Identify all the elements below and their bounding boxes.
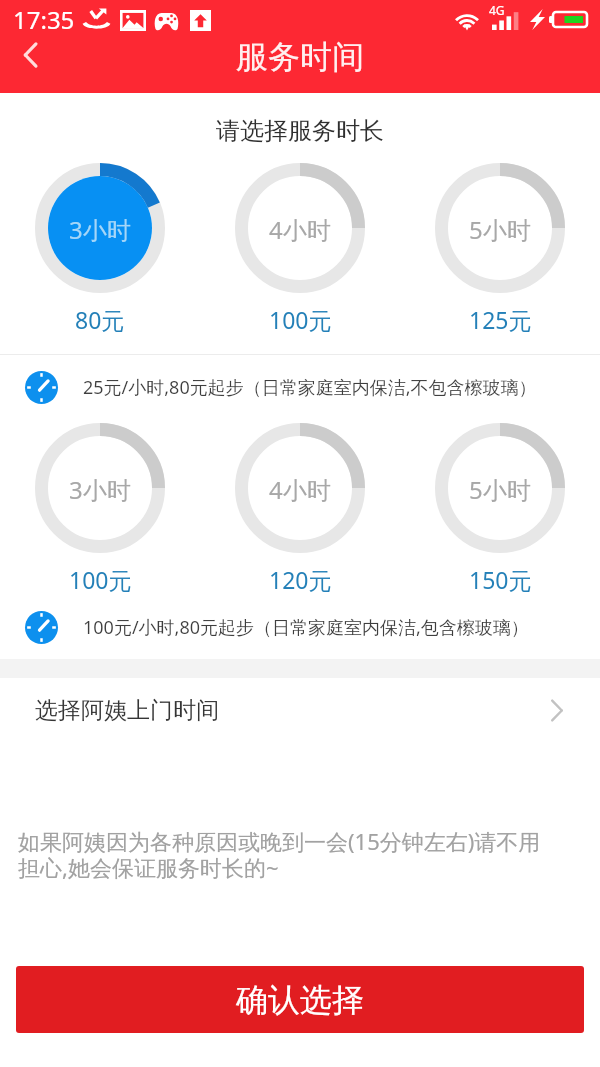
button[interactable]: 3小时 <box>28 423 172 595</box>
staticText: 4G <box>489 2 505 18</box>
staticText: 4小时 <box>269 213 331 246</box>
button[interactable]: 4小时 <box>228 163 372 335</box>
staticText: 3小时 <box>69 213 131 246</box>
button[interactable]: 5小时 <box>428 163 572 335</box>
staticText: 选择阿姨上门时间 <box>35 696 219 725</box>
staticText: 125元 <box>469 304 532 335</box>
staticText: 80元 <box>75 304 125 335</box>
staticText: 4小时 <box>269 473 331 506</box>
staticText: 120元 <box>269 564 332 595</box>
staticText: 100元 <box>269 304 332 335</box>
button[interactable]: 5小时 <box>428 423 572 595</box>
staticText: 100元 <box>69 564 132 595</box>
button[interactable]: 选择阿姨上门时间 <box>0 678 600 742</box>
staticText: 150元 <box>469 564 532 595</box>
staticText: 5小时 <box>469 213 531 246</box>
button[interactable]: 4小时 <box>228 423 372 595</box>
staticText: 服务时间 <box>0 37 600 77</box>
button[interactable]: 确认选择 <box>16 966 584 1033</box>
button[interactable]: Back <box>5 35 55 87</box>
staticText: 3小时 <box>69 473 131 506</box>
button[interactable]: 3小时 <box>28 163 172 335</box>
staticText: 如果阿姨因为各种原因或晚到一会(15分钟左右)请不用担心,她会保证服务时长的~ <box>18 826 558 882</box>
staticText: 17:35 <box>13 3 75 36</box>
staticText: 确认选择 <box>236 980 364 1020</box>
staticText: 100元/小时,80元起步（日常家庭室内保洁,包含檫玻璃） <box>83 615 529 640</box>
staticText: 25元/小时,80元起步（日常家庭室内保洁,不包含檫玻璃） <box>83 375 537 400</box>
staticText: 5小时 <box>469 473 531 506</box>
staticText: 请选择服务时长 <box>0 116 600 146</box>
